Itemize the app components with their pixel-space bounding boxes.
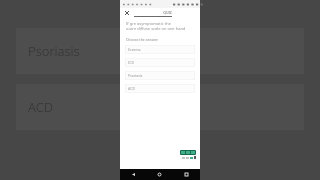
- button[interactable]: Eczema: [125, 45, 195, 54]
- button[interactable]: Recents: [173, 169, 200, 180]
- button[interactable]: Back: [120, 169, 146, 180]
- staticText: ACD: [28, 98, 53, 116]
- button[interactable]: ACD: [125, 84, 195, 93]
- button[interactable]: Close: [120, 8, 134, 17]
- button[interactable]: Home: [146, 169, 173, 180]
- button[interactable]: ACD: [16, 84, 304, 130]
- staticText: Psoriasis: [128, 73, 143, 78]
- staticText: Psoriasis: [28, 42, 80, 60]
- button[interactable]: QUIZ: [134, 8, 200, 17]
- staticText: ACD: [128, 86, 135, 91]
- staticText: QUIZ: [163, 10, 172, 15]
- button[interactable]: ICD: [125, 58, 195, 67]
- staticText: ICD: [128, 60, 134, 65]
- staticText: If gre asymptomatic the outre diffuse sc…: [126, 21, 186, 31]
- staticText: Eczema: [128, 47, 141, 52]
- staticText: Choose the answer: [126, 37, 158, 42]
- button[interactable]: Psoriasis: [16, 28, 304, 74]
- button[interactable]: Psoriasis: [125, 71, 195, 80]
- button[interactable]: Screen recorder controls: [172, 150, 196, 159]
